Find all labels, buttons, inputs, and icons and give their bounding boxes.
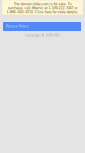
staticText: Privacy Policy	[6, 25, 29, 28]
staticText: 1-866-835-6731. Click here for more deta…	[6, 10, 78, 14]
button[interactable]: Privacy Policy	[3, 22, 81, 31]
staticText: Copyright © 2018 ASP	[25, 34, 59, 37]
staticText: purchase, call Afternic at 1-339-222-514…	[7, 6, 77, 10]
staticText: The domain bibp.com is for sale. To	[13, 2, 71, 6]
button[interactable]: The domain bibp.com is for sale. To	[2, 0, 83, 15]
